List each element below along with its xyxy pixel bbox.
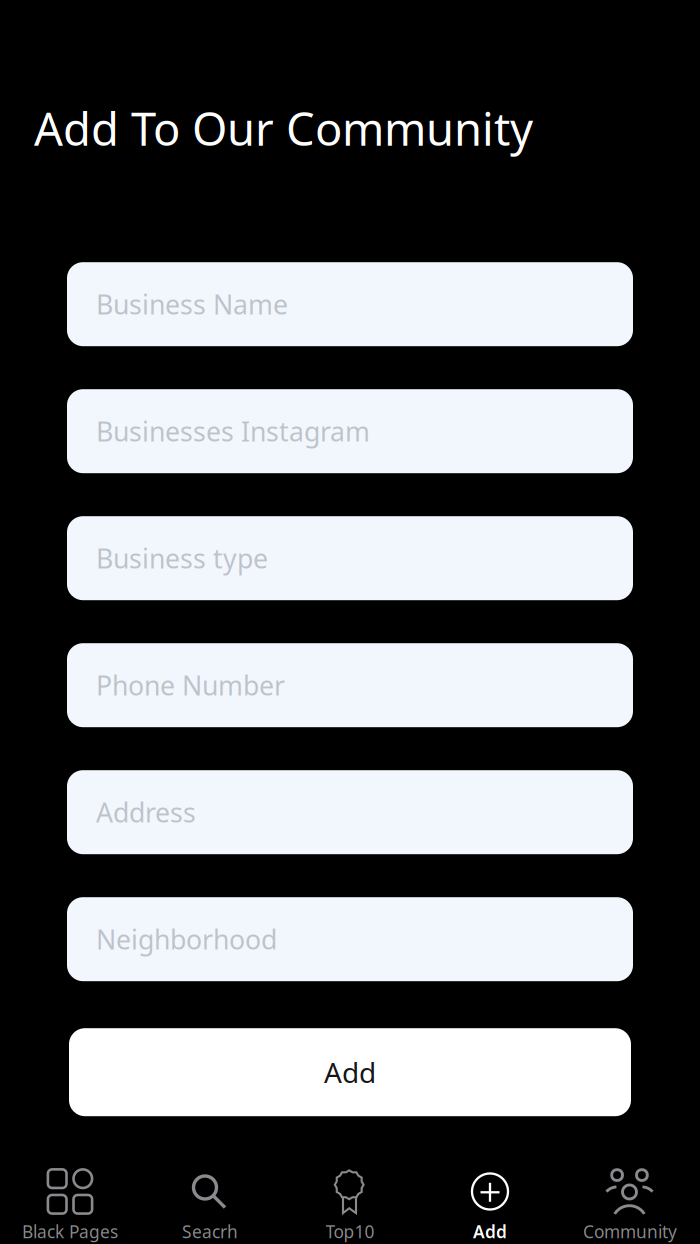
staticText: Add (473, 1220, 507, 1243)
button[interactable]: Businesses Instagram (67, 389, 633, 473)
staticText: Community (583, 1220, 677, 1243)
button[interactable]: Phone Number (67, 643, 633, 727)
button[interactable]: Top10 (280, 1168, 420, 1243)
button[interactable]: Add (420, 1168, 560, 1243)
staticText: Business Name (96, 286, 288, 322)
staticText: Neighborhood (96, 921, 277, 957)
staticText: Businesses Instagram (96, 413, 370, 449)
button[interactable]: Black Pages (0, 1168, 140, 1243)
staticText: Black Pages (22, 1220, 118, 1243)
button[interactable]: Add (69, 1028, 631, 1116)
staticText: Business type (96, 540, 268, 576)
staticText: Seacrh (182, 1220, 238, 1243)
button[interactable]: Business type (67, 516, 633, 600)
button[interactable]: Seacrh (140, 1168, 280, 1243)
staticText: Add (324, 1054, 376, 1091)
staticText: Top10 (325, 1220, 374, 1243)
staticText: Add To Our Community (34, 98, 533, 158)
button[interactable]: Address (67, 770, 633, 854)
staticText: Address (96, 794, 196, 830)
staticText: Phone Number (96, 667, 285, 703)
button[interactable]: Community (560, 1168, 700, 1243)
button[interactable]: Business Name (67, 262, 633, 346)
button[interactable]: Neighborhood (67, 897, 633, 981)
